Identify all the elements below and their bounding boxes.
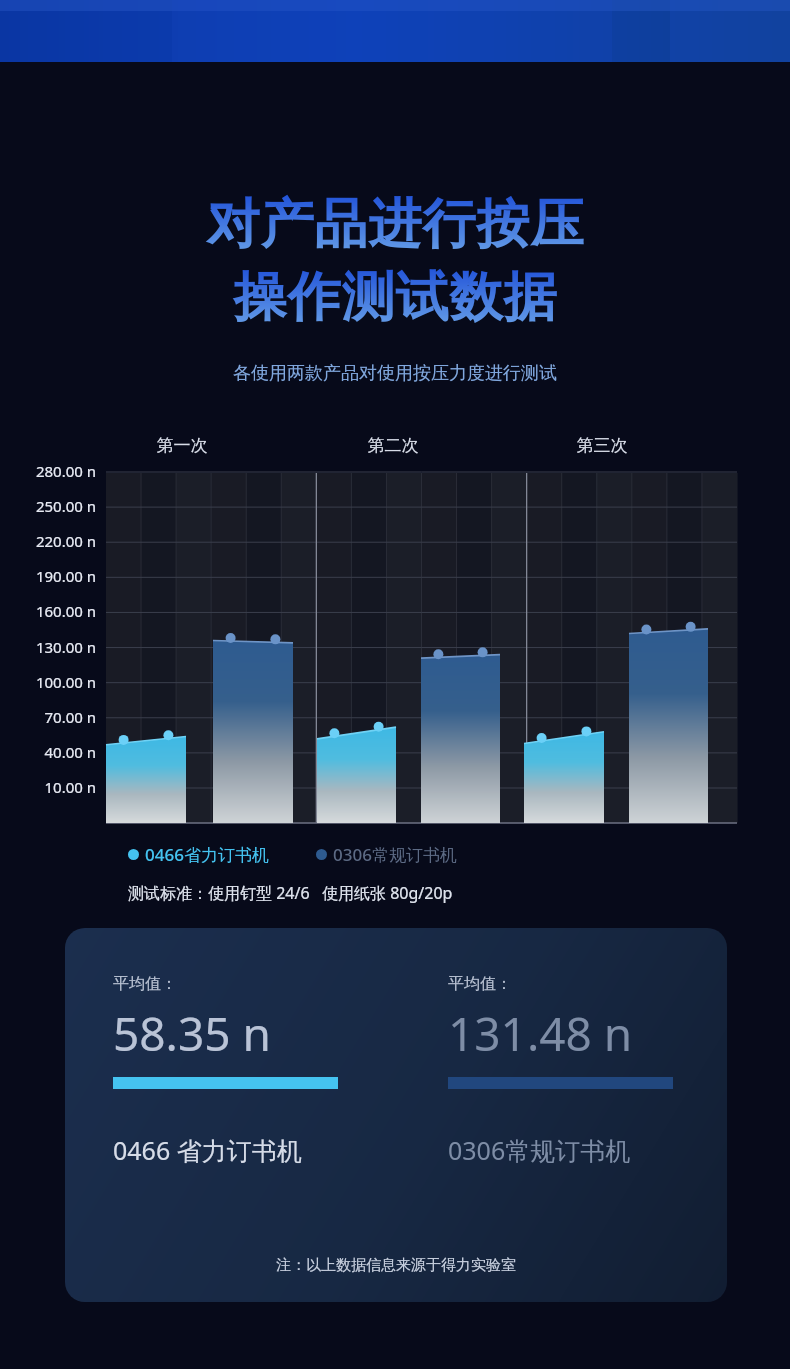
staticText: 操作测试数据: [233, 264, 557, 331]
staticText: 第一次: [122, 435, 242, 456]
staticText: 250.00 n: [0, 496, 96, 516]
staticText: 第三次: [542, 435, 662, 456]
staticText: 对产品进行按压: [206, 191, 584, 258]
staticText: 0466省力订书机: [145, 843, 269, 866]
staticText: 平均值：: [448, 974, 512, 994]
staticText: 0306常规订书机: [333, 843, 457, 866]
staticText: 平均值：: [113, 974, 177, 994]
staticText: 130.00 n: [0, 637, 96, 657]
staticText: 280.00 n: [0, 461, 96, 481]
staticText: 10.00 n: [0, 777, 96, 797]
button[interactable]: 0466省力订书机: [128, 843, 269, 866]
staticText: 各使用两款产品对使用按压力度进行测试: [233, 362, 557, 385]
staticText: 220.00 n: [0, 531, 96, 551]
staticText: 190.00 n: [0, 566, 96, 586]
button[interactable]: 平均值：: [65, 928, 727, 1302]
staticText: 58.35 n: [113, 1002, 271, 1065]
staticText: 131.48 n: [448, 1002, 633, 1065]
staticText: 160.00 n: [0, 601, 96, 621]
staticText: 第二次: [333, 435, 453, 456]
staticText: 0306常规订书机: [448, 1133, 631, 1167]
button[interactable]: 0306常规订书机: [316, 843, 457, 866]
staticText: 注：以上数据信息来源于得力实验室: [276, 1256, 516, 1275]
staticText: 70.00 n: [0, 707, 96, 727]
staticText: 测试标准：使用钉型 24/6 使用纸张 80g/20p: [128, 882, 453, 904]
staticText: 0466 省力订书机: [113, 1133, 302, 1167]
staticText: 40.00 n: [0, 742, 96, 762]
staticText: 100.00 n: [0, 672, 96, 692]
